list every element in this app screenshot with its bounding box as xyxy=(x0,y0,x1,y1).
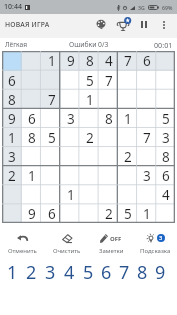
button[interactable]: Отменить xyxy=(0,232,45,256)
button[interactable]: 2 xyxy=(80,128,99,147)
button[interactable]: 4 xyxy=(156,185,175,204)
button[interactable]: НОВАЯ ИГРА xyxy=(5,20,50,29)
button[interactable] xyxy=(80,147,99,166)
button[interactable]: 1 xyxy=(3,260,22,284)
button[interactable]: 3 xyxy=(137,166,156,185)
button[interactable] xyxy=(2,204,22,223)
button[interactable]: 7 xyxy=(118,51,137,71)
button[interactable]: 3 xyxy=(41,260,60,284)
button[interactable] xyxy=(156,51,175,71)
button[interactable]: Theme xyxy=(92,15,109,32)
button[interactable] xyxy=(99,185,118,204)
button[interactable]: 9 xyxy=(2,109,22,128)
button[interactable]: 4 xyxy=(60,260,79,284)
button[interactable] xyxy=(118,128,137,147)
button[interactable]: 1 xyxy=(137,204,156,223)
button[interactable]: 1 xyxy=(118,109,137,128)
button[interactable] xyxy=(61,204,80,223)
button[interactable] xyxy=(42,166,61,185)
button[interactable] xyxy=(80,204,99,223)
button[interactable]: 4 xyxy=(99,51,118,71)
button[interactable]: More options xyxy=(156,17,172,33)
button[interactable] xyxy=(156,90,175,109)
staticText: 7 xyxy=(105,72,113,90)
button[interactable]: 1 xyxy=(42,51,61,71)
button[interactable]: 8 xyxy=(22,128,42,147)
button[interactable] xyxy=(118,71,137,90)
button[interactable] xyxy=(22,185,42,204)
button[interactable]: 7 xyxy=(115,260,133,284)
button[interactable] xyxy=(156,71,175,90)
button[interactable] xyxy=(22,90,42,109)
button[interactable]: 5 xyxy=(156,109,175,128)
button[interactable] xyxy=(99,128,118,147)
button[interactable]: 8 xyxy=(133,260,151,284)
button[interactable] xyxy=(99,166,118,185)
button[interactable]: 2 xyxy=(118,147,137,166)
button[interactable]: 9 xyxy=(151,260,169,284)
button[interactable]: 3 xyxy=(156,128,175,147)
button[interactable]: 3 xyxy=(2,147,22,166)
button[interactable]: Очистить xyxy=(45,232,89,256)
button[interactable] xyxy=(22,51,42,71)
button[interactable] xyxy=(137,185,156,204)
button[interactable] xyxy=(118,90,137,109)
button[interactable] xyxy=(42,109,61,128)
button[interactable] xyxy=(137,90,156,109)
button[interactable] xyxy=(22,147,42,166)
button[interactable]: 6 xyxy=(137,51,156,71)
button[interactable]: 6 xyxy=(2,71,22,90)
button[interactable]: 2 xyxy=(22,260,41,284)
button[interactable] xyxy=(137,147,156,166)
button[interactable] xyxy=(42,71,61,90)
button[interactable]: 7 xyxy=(42,90,61,109)
button[interactable] xyxy=(156,204,175,223)
button[interactable] xyxy=(80,109,99,128)
button[interactable]: OFF xyxy=(89,232,133,256)
button[interactable]: 5 xyxy=(118,204,137,223)
button[interactable] xyxy=(61,147,80,166)
button[interactable]: 6 xyxy=(42,204,61,223)
button[interactable] xyxy=(42,147,61,166)
button[interactable] xyxy=(61,71,80,90)
button[interactable] xyxy=(42,185,61,204)
button[interactable]: 8 xyxy=(99,109,118,128)
button[interactable] xyxy=(61,166,80,185)
button[interactable] xyxy=(61,90,80,109)
button[interactable]: 9 xyxy=(61,51,80,71)
button[interactable]: 8 xyxy=(156,147,175,166)
button[interactable]: 1 xyxy=(2,128,22,147)
button[interactable]: 1 xyxy=(61,185,80,204)
button[interactable]: 1 xyxy=(22,166,42,185)
button[interactable]: 6 xyxy=(97,260,115,284)
button[interactable] xyxy=(118,185,137,204)
button[interactable]: 2 xyxy=(99,204,118,223)
button[interactable]: 8 xyxy=(2,90,22,109)
button[interactable]: 3 xyxy=(61,109,80,128)
button[interactable] xyxy=(2,185,22,204)
button[interactable]: 5 xyxy=(42,128,61,147)
button[interactable]: 6 xyxy=(156,166,175,185)
button[interactable] xyxy=(99,147,118,166)
button[interactable]: 5 xyxy=(79,260,97,284)
button[interactable] xyxy=(22,71,42,90)
button[interactable] xyxy=(80,166,99,185)
button[interactable] xyxy=(61,128,80,147)
button[interactable]: 5 xyxy=(80,71,99,90)
button[interactable] xyxy=(80,185,99,204)
button[interactable] xyxy=(99,90,118,109)
button[interactable]: 2 xyxy=(2,166,22,185)
button[interactable]: 3 xyxy=(133,232,177,256)
button[interactable]: 1 xyxy=(80,90,99,109)
button[interactable]: 9 xyxy=(22,204,42,223)
button[interactable]: 6 xyxy=(22,109,42,128)
button[interactable]: 7 xyxy=(99,71,118,90)
button[interactable] xyxy=(137,71,156,90)
button[interactable]: 8 xyxy=(80,51,99,71)
button[interactable]: 7 xyxy=(137,128,156,147)
button[interactable] xyxy=(137,109,156,128)
button[interactable] xyxy=(2,51,22,71)
button[interactable] xyxy=(118,166,137,185)
button[interactable]: Pause xyxy=(135,16,152,33)
button[interactable]: Achievements xyxy=(114,15,132,33)
